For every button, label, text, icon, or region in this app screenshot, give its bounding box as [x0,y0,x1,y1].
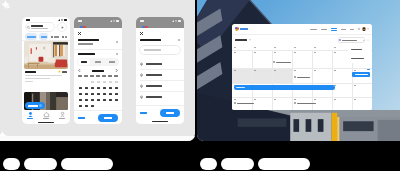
button[interactable]: Close [140,32,143,35]
button[interactable] [200,158,217,170]
button[interactable] [139,45,181,55]
button[interactable] [232,68,292,83]
button[interactable] [272,51,292,63]
button[interactable] [160,109,180,117]
button[interactable] [273,61,291,63]
button[interactable] [351,45,371,54]
button[interactable] [294,102,316,104]
button[interactable]: Next [115,69,118,72]
button[interactable] [232,98,252,110]
button[interactable] [140,70,180,80]
button[interactable]: Filters [57,22,67,32]
button[interactable] [234,102,254,104]
button[interactable] [92,59,104,65]
button[interactable] [232,69,252,81]
button[interactable] [350,29,354,30]
button[interactable] [28,102,42,109]
button[interactable] [352,84,372,96]
button[interactable]: Search [358,28,360,30]
button[interactable] [292,51,312,63]
button[interactable] [106,59,118,65]
button[interactable] [341,29,346,30]
button[interactable] [24,158,57,170]
button[interactable] [252,98,272,110]
button[interactable] [61,158,113,170]
button[interactable] [221,158,254,170]
button[interactable] [232,84,252,96]
button[interactable] [312,84,332,96]
button[interactable] [292,84,312,96]
button[interactable] [332,84,352,96]
button[interactable] [321,29,327,30]
button[interactable] [258,158,310,170]
button[interactable] [252,84,272,96]
button[interactable] [232,51,252,63]
button[interactable] [140,112,147,114]
button[interactable] [312,98,332,110]
button[interactable] [332,69,352,81]
button[interactable] [272,84,292,96]
button[interactable] [312,51,332,63]
button[interactable] [140,92,180,102]
button[interactable] [292,69,312,81]
button[interactable]: Filters [0,0,195,141]
button[interactable] [272,69,292,81]
button[interactable]: Saved [38,111,54,120]
button[interactable] [351,54,371,63]
button[interactable] [272,98,292,110]
button[interactable]: Search [232,24,372,110]
button[interactable] [332,98,352,110]
button[interactable] [140,81,180,91]
button[interactable] [339,37,364,43]
button[interactable] [25,22,55,32]
button[interactable] [294,76,310,78]
button[interactable] [140,59,180,69]
button[interactable] [352,69,372,81]
button[interactable] [310,29,317,30]
button[interactable] [98,114,118,122]
button[interactable] [234,85,335,90]
button[interactable] [25,33,37,40]
button[interactable]: Profile [54,111,70,120]
button[interactable] [312,69,332,81]
button[interactable]: Previous [78,69,81,72]
button[interactable] [352,98,372,110]
button[interactable] [235,27,239,31]
button[interactable] [78,117,85,119]
button[interactable] [252,69,272,81]
button[interactable] [252,51,272,63]
button[interactable]: Explore [22,111,38,120]
button[interactable] [331,28,337,31]
button[interactable]: Close [78,32,81,35]
button[interactable] [24,41,68,69]
button[interactable] [24,92,68,110]
button[interactable] [292,98,312,110]
button[interactable] [352,72,370,77]
button[interactable]: Search [197,0,400,141]
button[interactable] [362,27,366,31]
button[interactable] [78,59,90,65]
button[interactable] [3,158,20,170]
button[interactable] [352,51,372,63]
button[interactable] [39,33,48,40]
button[interactable] [332,51,352,63]
